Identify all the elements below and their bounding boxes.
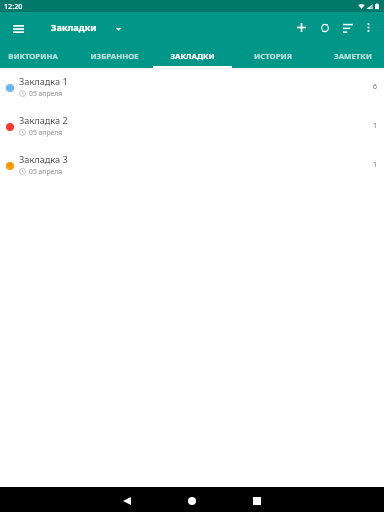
staticText: 05 апреля: [29, 167, 63, 176]
staticText: 05 апреля: [29, 89, 63, 98]
button[interactable]: Закладка 2: [0, 107, 384, 146]
button[interactable]: Add: [289, 12, 313, 45]
staticText: ИСТОРИЯ: [254, 51, 292, 62]
button[interactable]: ВИКТОРИНА: [0, 45, 70, 68]
button[interactable]: Закладка 1: [0, 68, 384, 107]
staticText: 1: [373, 160, 378, 170]
button[interactable]: ИЗБРАННОЕ: [74, 45, 154, 68]
button[interactable]: ИСТОРИЯ: [233, 45, 313, 68]
button[interactable]: Home: [170, 488, 214, 512]
staticText: Закладка 2: [19, 114, 68, 127]
staticText: ВИКТОРИНА: [8, 51, 58, 62]
staticText: 05 апреля: [29, 128, 63, 137]
staticText: 1: [373, 121, 378, 131]
button[interactable]: ЗАКЛАДКИ: [153, 45, 232, 68]
button[interactable]: More options: [358, 12, 379, 45]
staticText: ЗАМЕТКИ: [334, 51, 372, 62]
staticText: 6: [373, 82, 378, 92]
button[interactable]: Navigation menu: [0, 12, 36, 45]
staticText: ЗАКЛАДКИ: [170, 51, 215, 62]
staticText: Закладки: [51, 21, 97, 34]
button[interactable]: ЗАМЕТКИ: [317, 45, 384, 68]
staticText: Закладка 1: [19, 75, 68, 88]
button[interactable]: Expand menu: [111, 22, 125, 36]
button[interactable]: Sort: [337, 12, 358, 45]
button[interactable]: Back: [105, 488, 149, 512]
staticText: Закладка 3: [19, 153, 68, 166]
staticText: ИЗБРАННОЕ: [90, 51, 139, 62]
button[interactable]: Закладка 3: [0, 146, 384, 185]
button[interactable]: Recent apps: [235, 488, 279, 512]
staticText: 12:20: [4, 1, 23, 11]
button[interactable]: Sync: [313, 12, 337, 45]
